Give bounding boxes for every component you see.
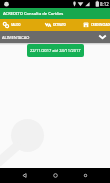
- staticText: EXTRATO: [53, 23, 66, 27]
- button[interactable]: 22/11/2017 até 24/11/2017: [27, 44, 84, 57]
- button[interactable]: EXTRATO: [45, 19, 66, 31]
- staticText: CREDENCIADOS: [91, 23, 110, 27]
- button[interactable]: SALDO: [3, 19, 21, 31]
- staticText: ACREDITO Consulta de Cartões: [3, 11, 64, 17]
- button[interactable]: CREDENCIADOS: [83, 19, 110, 31]
- button[interactable]: Back: [21, 168, 27, 183]
- button[interactable]: Recent apps: [82, 168, 88, 183]
- staticText: ALIMENTACAO: [2, 35, 97, 40]
- staticText: 22/11/2017 até 24/11/2017: [30, 48, 81, 53]
- staticText: SALDO: [11, 23, 21, 27]
- button[interactable]: Home: [52, 168, 58, 183]
- button[interactable]: ALIMENTACAO: [0, 31, 110, 43]
- staticText: 8:12: [100, 1, 109, 7]
